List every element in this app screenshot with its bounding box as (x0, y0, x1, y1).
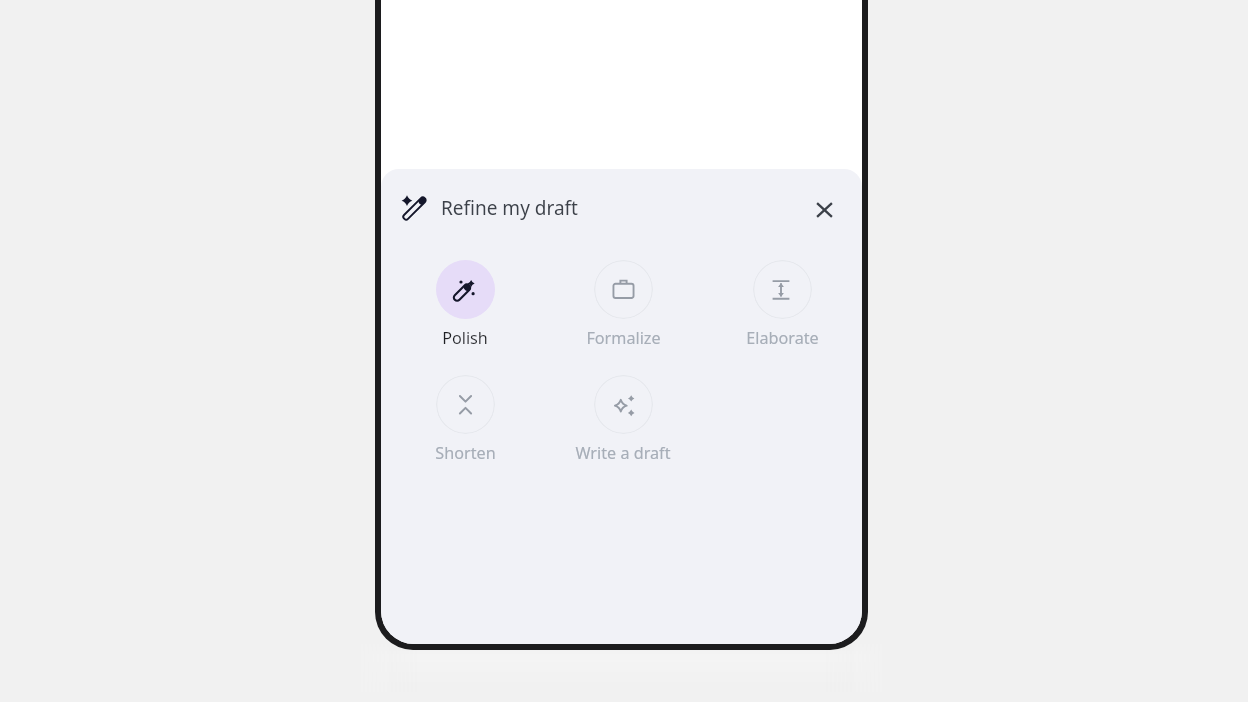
button[interactable]: Shorten (390, 367, 540, 472)
staticText: Polish (442, 327, 488, 349)
button[interactable]: Polish (390, 252, 540, 357)
staticText: Formalize (586, 327, 661, 349)
staticText: Elaborate (746, 327, 819, 349)
staticText: Shorten (435, 442, 496, 464)
staticText: Refine my draft (441, 195, 578, 221)
button[interactable]: Close (802, 188, 846, 232)
button[interactable]: Elaborate (707, 252, 857, 357)
button[interactable]: Write a draft (548, 367, 698, 472)
staticText: Write a draft (575, 442, 671, 464)
button[interactable]: Formalize (548, 252, 698, 357)
